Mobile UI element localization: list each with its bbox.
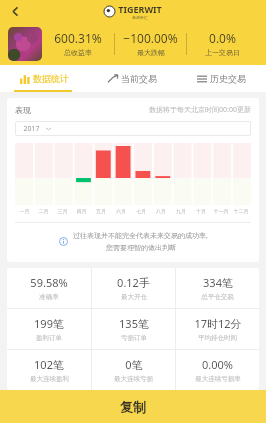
staticText: 最大连续盈利 [30,375,69,383]
button[interactable]: 102笔 [7,350,91,390]
staticText: 表现 [15,105,31,115]
staticText: 盈利订单 [36,334,62,342]
button[interactable]: 135笔 [92,309,175,349]
staticText: 七月 [131,208,151,214]
button[interactable]: Back [5,1,25,21]
button[interactable]: −100.00% [115,30,186,57]
staticText: 最大跌幅 [137,48,165,57]
staticText: 0.0% [209,30,236,46]
staticText: 数据统计 [33,73,69,84]
staticText: 一月 [15,208,34,214]
staticText: 准确率 [39,293,59,301]
button[interactable]: 复制 [0,390,266,423]
staticText: 四月 [72,208,91,214]
staticText: TIGERWIT [118,3,162,15]
staticText: 最大连续亏损率 [195,375,241,383]
staticText: 当前交易 [121,73,157,84]
staticText: 亏损订单 [121,334,147,342]
staticText: 老虎外汇 [132,15,148,20]
staticText: −100.00% [123,30,178,46]
staticText: 334笔 [203,275,233,290]
staticText: 数据将于每天北京时间00:00更新 [149,105,251,115]
staticText: 0笔 [125,357,143,372]
button[interactable]: 0.0% [187,30,258,57]
staticText: 历史交易 [210,73,246,84]
button[interactable]: Trader avatar [8,27,42,61]
button[interactable]: 600.31% [42,30,114,57]
button[interactable]: 2017 [15,121,251,136]
button[interactable]: 0.12手 [92,268,175,308]
button[interactable]: 0笔 [92,350,175,390]
button[interactable]: 17时12分 [176,309,259,349]
staticText: 十一月 [211,208,231,214]
staticText: 九月 [171,208,191,214]
staticText: 199笔 [34,316,64,331]
staticText: 最大连续亏损 [114,375,153,383]
staticText: 17时12分 [194,316,242,331]
staticText: 六月 [111,208,131,214]
staticText: 八月 [151,208,171,214]
button[interactable]: 334笔 [176,268,259,308]
staticText: 上一交易日 [205,48,240,57]
staticText: 复制 [120,399,146,415]
staticText: 59.58% [30,275,68,290]
staticText: 十月 [191,208,211,214]
staticText: 您需要理智的做出判断 [106,243,176,252]
staticText: 五月 [91,208,111,214]
staticText: 0.12手 [117,275,150,290]
staticText: 102笔 [34,357,64,372]
staticText: 十二月 [231,208,251,214]
staticText: 0.00% [202,357,233,372]
button[interactable]: 0.00% [176,350,259,390]
staticText: 2017 [23,124,40,134]
staticText: 平均持仓时间 [198,334,237,342]
staticText: 三月 [53,208,72,214]
staticText: 135笔 [119,316,149,331]
button[interactable]: 当前交易 [88,65,177,92]
staticText: 过往表现并不能完全代表未来交易的成功率, [73,231,208,241]
staticText: 总平仓交易 [201,293,234,301]
button[interactable]: 199笔 [7,309,91,349]
button[interactable]: 历史交易 [177,65,266,92]
staticText: 最大开仓 [121,293,147,301]
staticText: 二月 [34,208,53,214]
staticText: 总收益率 [64,48,92,57]
staticText: 600.31% [54,30,102,46]
button[interactable]: 59.58% [7,268,91,308]
button[interactable]: 数据统计 [0,65,88,92]
